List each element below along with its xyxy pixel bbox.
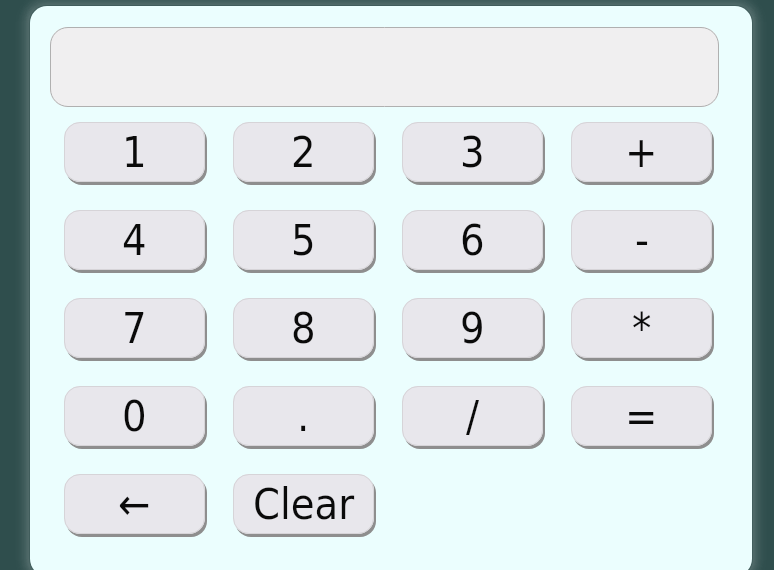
button[interactable]: 6 (402, 210, 545, 273)
button[interactable]: 7 (64, 298, 207, 361)
staticText: Clear (253, 479, 355, 529)
button[interactable]: . (233, 386, 376, 449)
staticText: . (297, 391, 310, 441)
button[interactable]: * (571, 298, 714, 361)
staticText: 1 (122, 127, 147, 177)
staticText: 8 (291, 303, 316, 353)
button[interactable]: 9 (402, 298, 545, 361)
staticText: ← (118, 479, 151, 529)
staticText: 9 (460, 303, 485, 353)
staticText: 3 (460, 127, 485, 177)
button[interactable] (50, 27, 719, 107)
staticText: 6 (460, 215, 485, 265)
button[interactable]: 0 (64, 386, 207, 449)
button[interactable]: 2 (233, 122, 376, 185)
staticText: + (625, 127, 658, 177)
staticText: * (632, 303, 652, 353)
button[interactable]: 4 (64, 210, 207, 273)
button[interactable]: + (571, 122, 714, 185)
button[interactable]: 5 (233, 210, 376, 273)
staticText: 2 (291, 127, 316, 177)
staticText: 4 (122, 215, 147, 265)
staticText: / (466, 391, 480, 441)
button[interactable]: Clear (233, 474, 376, 537)
button[interactable]: 1 (64, 122, 207, 185)
staticText: - (635, 215, 649, 265)
button[interactable]: / (402, 386, 545, 449)
button[interactable]: - (571, 210, 714, 273)
staticText: 7 (122, 303, 147, 353)
staticText: 5 (291, 215, 316, 265)
button[interactable]: 3 (402, 122, 545, 185)
button[interactable]: 8 (233, 298, 376, 361)
staticText: = (625, 391, 658, 441)
button[interactable]: = (571, 386, 714, 449)
staticText: 0 (122, 391, 147, 441)
button[interactable]: ← (64, 474, 207, 537)
